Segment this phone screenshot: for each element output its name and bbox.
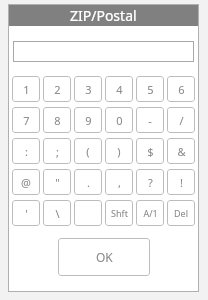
staticText: 7 — [23, 113, 30, 128]
button[interactable]: A/1 — [136, 200, 164, 226]
staticText: / — [179, 113, 184, 128]
staticText: ' — [25, 206, 28, 221]
staticText: , — [118, 175, 121, 190]
button[interactable]: Del — [167, 200, 195, 226]
button[interactable]: , — [105, 169, 133, 195]
button[interactable]: & — [167, 138, 195, 164]
staticText: - — [148, 113, 152, 128]
staticText: 9 — [85, 113, 92, 128]
button[interactable]: 9 — [74, 107, 102, 133]
button[interactable] — [13, 41, 194, 62]
staticText: 1 — [23, 82, 30, 97]
staticText: @ — [21, 175, 31, 190]
staticText: 2 — [54, 82, 61, 97]
button[interactable]: Shft — [105, 200, 133, 226]
button[interactable]: ; — [43, 138, 71, 164]
staticText: Del — [174, 207, 188, 219]
staticText: ! — [180, 175, 183, 190]
staticText: $ — [147, 144, 154, 159]
staticText: & — [177, 144, 186, 159]
staticText: ; — [56, 144, 59, 159]
button[interactable]: 1 — [12, 76, 40, 102]
button[interactable]: 2 — [43, 76, 71, 102]
staticText: OK — [96, 249, 113, 265]
staticText: 0 — [116, 113, 123, 128]
staticText: 6 — [178, 82, 185, 97]
staticText: Shft — [111, 207, 128, 219]
button[interactable]: " — [43, 169, 71, 195]
button[interactable]: ) — [105, 138, 133, 164]
staticText: A/1 — [143, 207, 158, 219]
staticText: ( — [86, 144, 90, 159]
button[interactable]: $ — [136, 138, 164, 164]
button[interactable]: 5 — [136, 76, 164, 102]
button[interactable]: 8 — [43, 107, 71, 133]
staticText: ? — [148, 175, 153, 190]
staticText: 5 — [147, 82, 154, 97]
staticText: . — [87, 175, 90, 190]
button[interactable]: 7 — [12, 107, 40, 133]
staticText: : — [25, 144, 28, 159]
staticText: ZIP/Postal — [70, 6, 137, 25]
button[interactable]: . — [74, 169, 102, 195]
button[interactable]: ( — [74, 138, 102, 164]
button[interactable]: - — [136, 107, 164, 133]
staticText: \ — [55, 206, 60, 221]
button[interactable]: ' — [12, 200, 40, 226]
button[interactable]: @ — [12, 169, 40, 195]
button[interactable]: 3 — [74, 76, 102, 102]
button[interactable]: 4 — [105, 76, 133, 102]
staticText: 3 — [85, 82, 92, 97]
button[interactable]: : — [12, 138, 40, 164]
button[interactable]: / — [167, 107, 195, 133]
staticText: 8 — [54, 113, 61, 128]
staticText: " — [55, 175, 60, 190]
staticText: 4 — [116, 82, 123, 97]
button[interactable]: \ — [43, 200, 71, 226]
button[interactable]: 6 — [167, 76, 195, 102]
button[interactable]: ? — [136, 169, 164, 195]
button[interactable] — [74, 200, 102, 226]
button[interactable]: OK — [58, 238, 150, 276]
button[interactable]: ! — [167, 169, 195, 195]
button[interactable]: 0 — [105, 107, 133, 133]
staticText: ) — [117, 144, 121, 159]
